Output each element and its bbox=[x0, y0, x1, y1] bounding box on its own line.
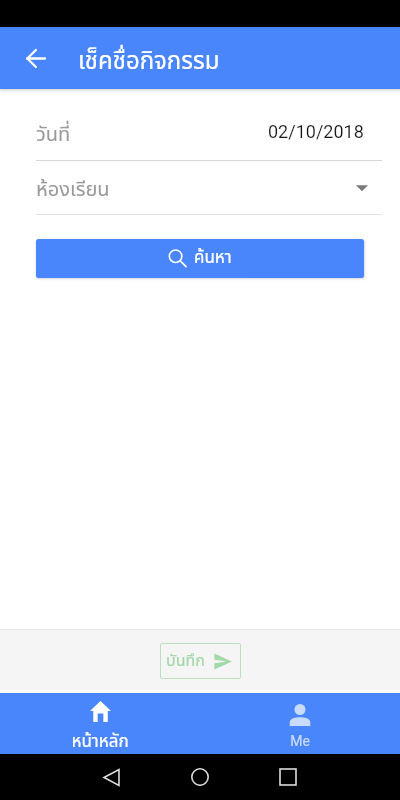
staticText: หน้าหลัก bbox=[71, 729, 129, 755]
staticText: 02/10/2018 bbox=[268, 121, 364, 142]
button[interactable]: ห้องเรียน bbox=[36, 161, 368, 214]
staticText: ห้องเรียน bbox=[36, 175, 110, 205]
button[interactable]: หน้าหลัก bbox=[0, 698, 200, 759]
button[interactable]: Me bbox=[200, 695, 400, 756]
staticText: เช็คชื่อกิจกรรม bbox=[78, 44, 220, 80]
button[interactable]: Home bbox=[178, 755, 222, 799]
button[interactable]: Recent apps bbox=[266, 755, 310, 799]
button[interactable]: บันทึก bbox=[160, 643, 241, 679]
staticText: ค้นหา bbox=[194, 245, 232, 271]
staticText: Me bbox=[290, 733, 310, 749]
staticText: วันที่ bbox=[36, 120, 71, 150]
button[interactable]: ค้นหา bbox=[36, 239, 364, 278]
button[interactable]: Back bbox=[89, 755, 133, 799]
button[interactable]: Back bbox=[13, 36, 57, 80]
button[interactable]: วันที่ bbox=[36, 89, 382, 160]
staticText: บันทึก bbox=[166, 649, 205, 673]
